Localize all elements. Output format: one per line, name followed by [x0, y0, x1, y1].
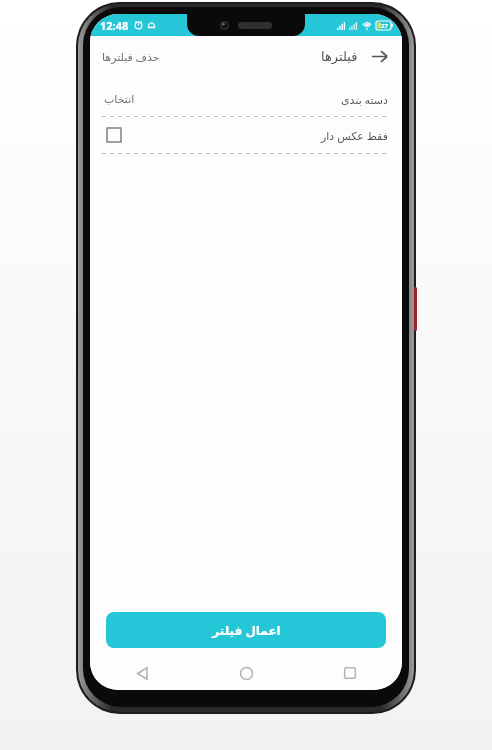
- staticText: حذف فیلترها: [102, 49, 160, 64]
- staticText: فیلترها: [321, 49, 358, 64]
- staticText: دسته بندی: [341, 92, 388, 107]
- button[interactable]: انتخاب: [90, 82, 402, 116]
- button[interactable]: Only with photo: [90, 117, 402, 153]
- button[interactable]: Home: [194, 656, 298, 690]
- button[interactable]: Only with photo: [104, 125, 124, 145]
- staticText: اعمال فیلتر: [212, 622, 281, 638]
- staticText: انتخاب: [104, 93, 135, 106]
- button[interactable]: Back: [90, 656, 194, 690]
- button[interactable]: اعمال فیلتر: [106, 612, 386, 648]
- button[interactable]: حذف فیلترها: [94, 43, 168, 70]
- staticText: فقط عکس دار: [321, 128, 388, 143]
- button[interactable]: Recents: [298, 656, 402, 690]
- staticText: 27: [381, 22, 388, 30]
- staticText: 12:48: [100, 18, 129, 33]
- button[interactable]: Back: [362, 39, 396, 73]
